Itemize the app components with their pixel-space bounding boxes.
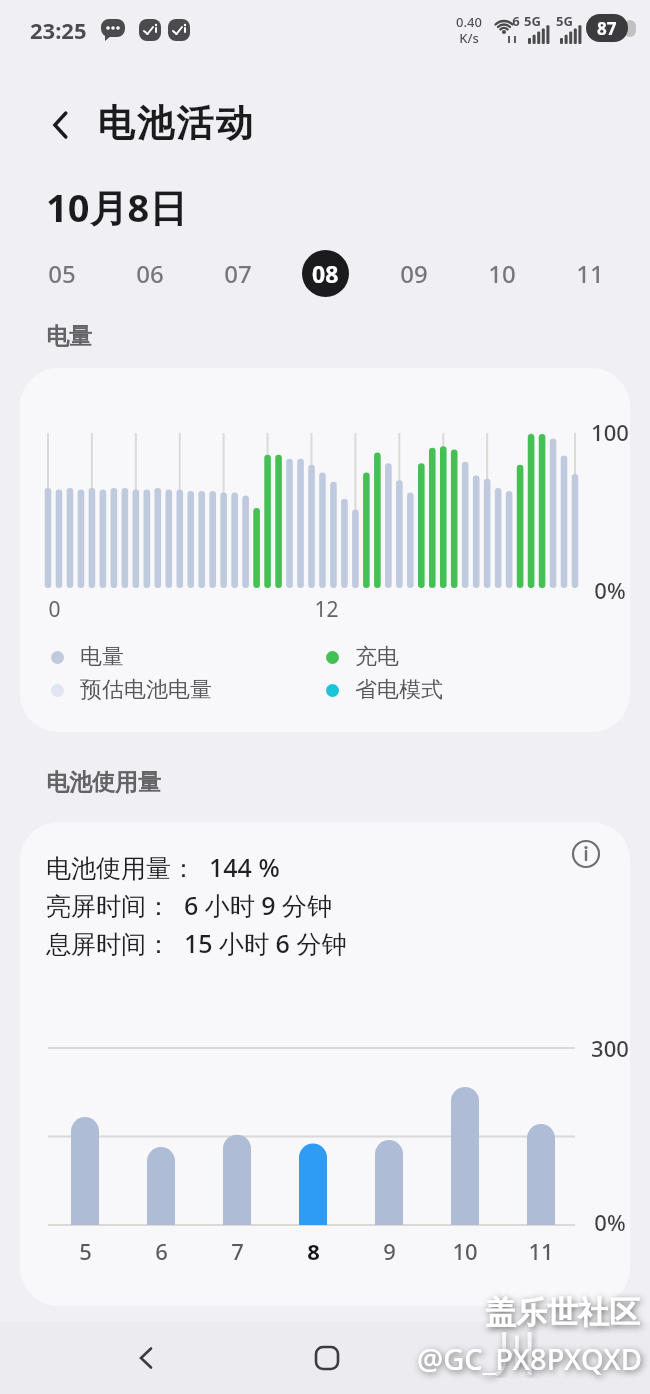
button[interactable]	[315, 1346, 339, 1370]
staticText: 5G	[556, 12, 573, 28]
staticText: 0	[48, 595, 61, 624]
staticText: 电量	[80, 643, 124, 671]
staticText: 盖乐世社区	[485, 1293, 640, 1332]
staticText: 100	[591, 417, 629, 447]
staticText: 11	[576, 257, 604, 290]
staticText: 12	[314, 595, 339, 624]
staticText: 06	[136, 257, 164, 290]
staticText: 08	[312, 258, 339, 289]
staticText: 5	[79, 1236, 92, 1266]
staticText: 电量	[46, 322, 92, 351]
button[interactable]: 09	[386, 252, 442, 294]
button[interactable]: 05	[34, 252, 90, 294]
staticText: 亮屏时间： 6 小时 9 分钟	[46, 888, 333, 922]
button[interactable]: 08	[302, 250, 349, 297]
button[interactable]	[50, 112, 72, 138]
button[interactable]: 10	[474, 252, 530, 294]
button[interactable]: 07	[210, 252, 266, 294]
staticText: 息屏时间： 15 小时 6 分钟	[46, 926, 347, 960]
staticText: 300	[591, 1033, 629, 1063]
staticText: 川	[492, 1326, 538, 1378]
staticText: 10	[452, 1236, 478, 1266]
staticText: 0%	[594, 1207, 626, 1237]
staticText: 8	[307, 1236, 320, 1266]
staticText: 07	[224, 257, 252, 290]
staticText: 省电模式	[355, 676, 443, 704]
staticText: 预估电池电量	[80, 676, 212, 704]
staticText: 87	[597, 17, 617, 40]
staticText: 10	[488, 257, 516, 290]
staticText: 6	[512, 12, 520, 28]
staticText: 电池使用量	[46, 768, 161, 797]
staticText: 0.40	[456, 13, 482, 30]
button[interactable]: 06	[122, 252, 178, 294]
staticText: 10月8日	[46, 181, 188, 233]
button[interactable]: 11	[562, 252, 618, 294]
staticText: @GC_PX8PXQXD	[417, 1339, 642, 1378]
staticText: K/s	[459, 29, 479, 46]
staticText: 6	[155, 1236, 168, 1266]
staticText: 5G	[524, 12, 541, 28]
staticText: 电池活动	[96, 100, 254, 147]
staticText: 7	[231, 1236, 244, 1266]
staticText: 11	[528, 1236, 554, 1266]
staticText: 09	[400, 257, 428, 290]
staticText: 9	[383, 1236, 396, 1266]
button[interactable]	[137, 1348, 157, 1368]
button[interactable]	[571, 839, 601, 869]
staticText: 电池使用量： 144 %	[46, 850, 280, 884]
staticText: 23:25	[30, 15, 87, 45]
staticText: 0%	[594, 575, 626, 605]
staticText: 05	[48, 257, 76, 290]
staticText: 充电	[355, 643, 399, 671]
